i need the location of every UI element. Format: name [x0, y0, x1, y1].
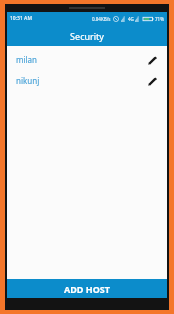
staticText: 10:31 AM	[10, 15, 32, 22]
button[interactable]: nikunj	[7, 70, 167, 91]
staticText: 4G	[128, 16, 134, 22]
staticText: nikunj	[16, 75, 40, 86]
button[interactable]: Edit nikunj	[145, 74, 159, 88]
staticText: ADD HOST	[64, 283, 110, 295]
staticText: milan	[16, 54, 38, 65]
button[interactable]: Edit milan	[145, 53, 159, 67]
button[interactable]: milan	[7, 49, 167, 70]
staticText: Security	[70, 30, 104, 42]
staticText: 0.84KB/s	[92, 16, 111, 22]
button[interactable]: ADD HOST	[7, 279, 167, 298]
staticText: 71%	[155, 16, 164, 22]
